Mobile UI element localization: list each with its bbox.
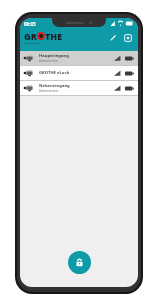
button[interactable]: Settings <box>122 32 133 43</box>
staticText: Nebeneingang <box>39 83 70 89</box>
button[interactable]: GROTHE eLock <box>20 66 138 80</box>
staticText: THE <box>45 30 63 42</box>
button[interactable]: Edit <box>108 32 119 43</box>
button[interactable]: Haupteingang <box>20 51 138 65</box>
staticText: DIRECT GROUP <box>24 42 40 45</box>
button[interactable]: Nebeneingang <box>20 81 138 95</box>
button[interactable]: Lock <box>68 251 91 274</box>
staticText: GROTHE eLock <box>39 70 70 76</box>
staticText: Administrator <box>39 89 59 93</box>
staticText: Administrator <box>39 59 59 63</box>
staticText: GR <box>24 30 37 42</box>
staticText: Haupteingang <box>39 53 69 59</box>
staticText: 09:03 <box>24 21 36 27</box>
